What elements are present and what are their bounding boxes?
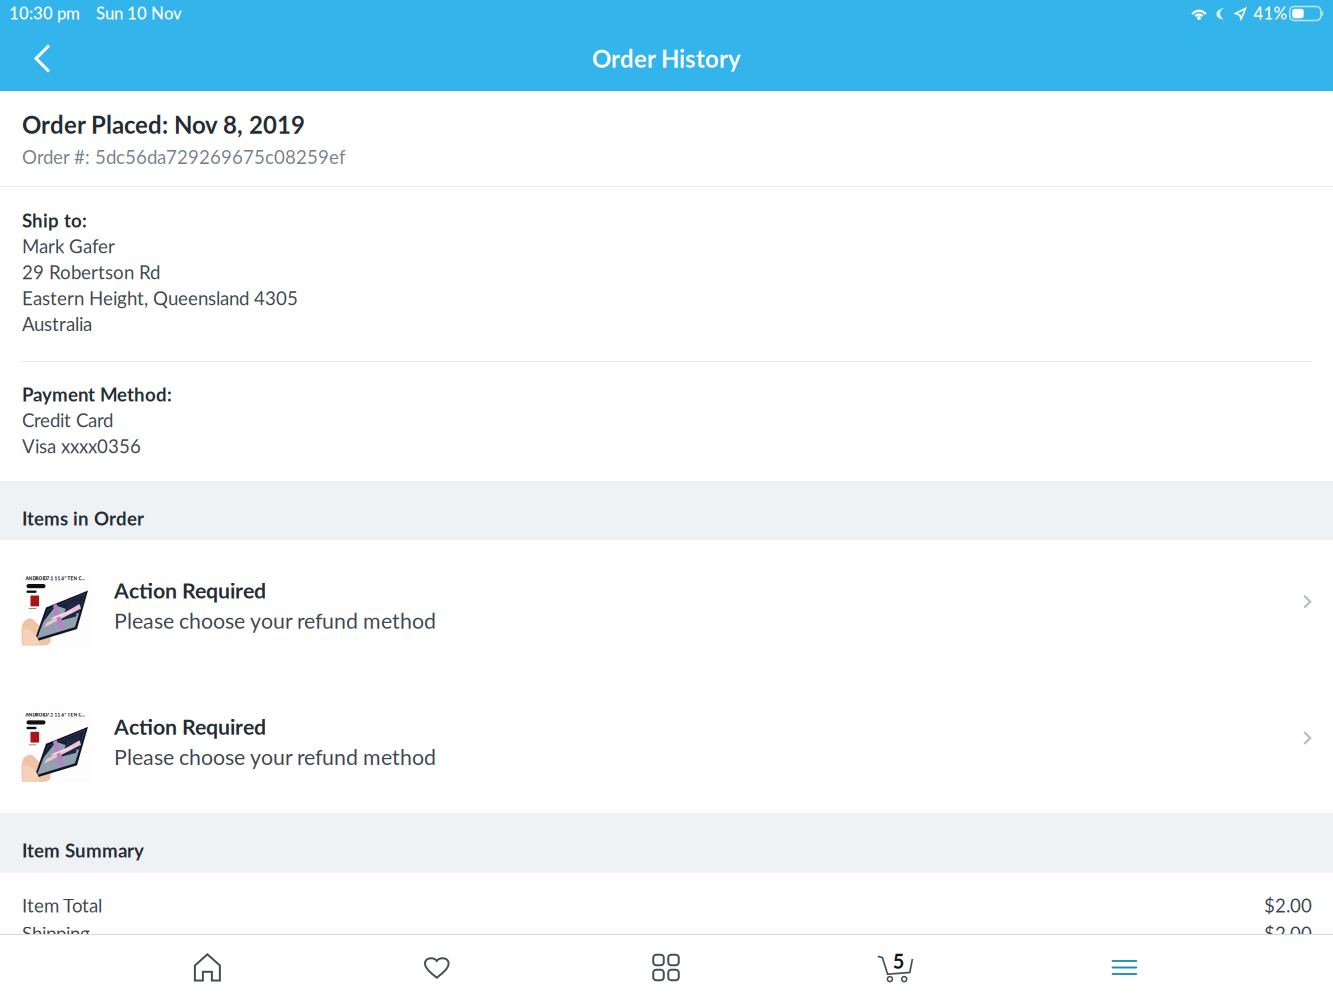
staticText: Please choose your refund method: [114, 608, 436, 633]
button[interactable]: Cart: [781, 935, 1010, 1000]
staticText: Payment Method:: [22, 383, 172, 405]
button[interactable]: Categories: [551, 935, 781, 1000]
staticText: 5: [893, 949, 905, 973]
staticText: 10:30 pm: [9, 3, 80, 23]
staticText: Order History: [592, 44, 741, 73]
staticText: 41%: [1253, 3, 1287, 23]
staticText: Order Placed: Nov 8, 2019: [22, 110, 305, 139]
button[interactable]: ANDROID7.1 11.6" TEN CORE: [0, 677, 1333, 813]
staticText: Australia: [22, 313, 92, 335]
staticText: Order #: 5dc56da729269675c08259ef: [22, 146, 346, 168]
button[interactable]: Menu: [1010, 935, 1239, 1000]
staticText: $2.00: [1264, 922, 1312, 944]
staticText: Item Total: [22, 894, 102, 916]
staticText: Mark Gafer: [22, 235, 115, 257]
staticText: Items in Order: [22, 507, 144, 529]
button[interactable]: ANDROID7.1 11.6" TEN CORE: [0, 540, 1333, 677]
staticText: Action Required: [114, 577, 266, 603]
staticText: Please choose your refund method: [114, 744, 436, 769]
staticText: Action Required: [114, 714, 266, 739]
button[interactable]: Favourites: [322, 935, 551, 1000]
button[interactable]: Home: [93, 935, 322, 1000]
button[interactable]: Back: [0, 26, 72, 91]
staticText: Shipping: [22, 922, 90, 944]
staticText: $2.00: [1264, 894, 1312, 916]
staticText: ANDROID7.1 11.6" TEN CORE: [25, 576, 87, 581]
staticText: Ship to:: [22, 209, 87, 231]
staticText: ANDROID7.1 11.6" TEN CORE: [25, 712, 87, 717]
staticText: Eastern Height, Queensland 4305: [22, 287, 298, 309]
staticText: Sun 10 Nov: [96, 3, 182, 23]
staticText: Visa xxxx0356: [22, 435, 141, 457]
staticText: Item Summary: [22, 839, 144, 861]
staticText: 29 Robertson Rd: [22, 261, 160, 283]
staticText: Credit Card: [22, 409, 113, 431]
